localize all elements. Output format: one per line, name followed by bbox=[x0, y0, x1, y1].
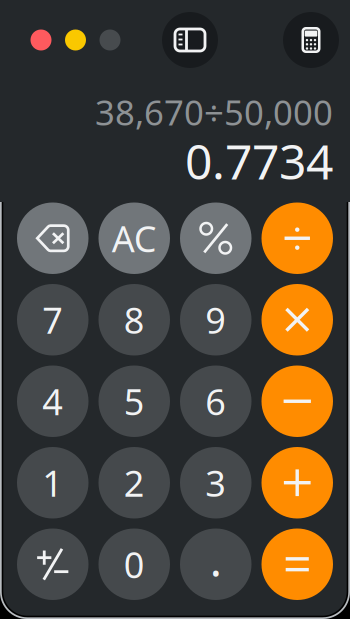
button[interactable]: Subtract bbox=[261, 365, 333, 437]
button[interactable]: 9 bbox=[180, 284, 251, 355]
button[interactable]: Calculator Mode bbox=[283, 12, 339, 68]
button[interactable]: 0 bbox=[98, 528, 170, 600]
button[interactable]: Percent bbox=[180, 202, 251, 274]
staticText: 2 bbox=[124, 459, 145, 507]
button[interactable]: 4 bbox=[17, 365, 88, 437]
button[interactable]: 8 bbox=[98, 284, 170, 355]
button[interactable]: Multiply bbox=[261, 284, 333, 355]
staticText: 38,670÷50,000 bbox=[95, 89, 333, 135]
button[interactable]: . bbox=[180, 528, 251, 600]
staticText: 0 bbox=[124, 540, 145, 588]
button[interactable]: Divide bbox=[261, 202, 333, 274]
button[interactable]: Toggle Sidebar bbox=[162, 12, 218, 68]
staticText: 0.7734 bbox=[185, 129, 333, 193]
staticText: 8 bbox=[124, 296, 145, 344]
button[interactable]: 2 bbox=[98, 447, 170, 518]
staticText: . bbox=[210, 529, 222, 589]
button[interactable]: Plus Minus bbox=[17, 528, 88, 600]
staticText: AC bbox=[112, 214, 157, 262]
staticText: 4 bbox=[42, 377, 63, 425]
staticText: 1 bbox=[42, 459, 63, 507]
button[interactable]: Delete bbox=[17, 202, 88, 274]
button[interactable]: AC bbox=[98, 202, 170, 274]
button[interactable]: 1 bbox=[17, 447, 88, 518]
button[interactable]: 7 bbox=[17, 284, 88, 355]
staticText: 3 bbox=[205, 459, 226, 507]
button[interactable]: 6 bbox=[180, 365, 251, 437]
staticText: 5 bbox=[124, 377, 145, 425]
button[interactable]: 5 bbox=[98, 365, 170, 437]
staticText: 6 bbox=[205, 377, 226, 425]
staticText: 9 bbox=[205, 296, 226, 344]
button[interactable]: Add bbox=[261, 447, 333, 518]
button[interactable]: Equals bbox=[261, 528, 333, 600]
staticText: 7 bbox=[42, 296, 63, 344]
button[interactable]: 3 bbox=[180, 447, 251, 518]
